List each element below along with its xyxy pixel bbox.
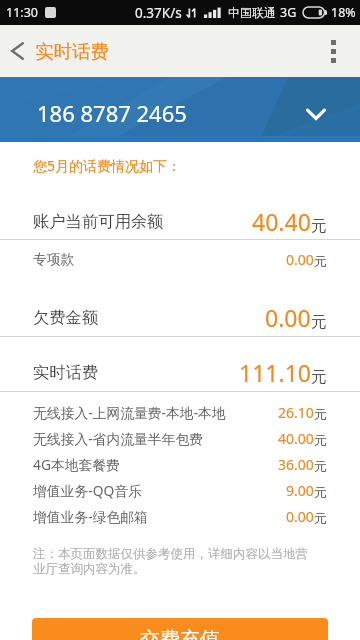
staticText: 0.00: [265, 302, 311, 333]
button[interactable]: 4G本地套餐费: [0, 444, 360, 470]
staticText: 元: [311, 367, 327, 387]
staticText: 交费充值: [140, 627, 220, 640]
staticText: 增值业务-QQ音乐: [33, 481, 142, 500]
staticText: 账户当前可用余额: [33, 211, 164, 232]
staticText: 9.00: [286, 481, 314, 500]
staticText: 元: [314, 253, 327, 269]
staticText: 3G: [280, 4, 297, 21]
staticText: 40.00: [278, 429, 314, 448]
staticText: 元: [311, 216, 327, 236]
button[interactable]: 欠费金额: [0, 283, 360, 336]
button[interactable]: 增值业务-QQ音乐: [0, 470, 360, 496]
staticText: 40.40: [252, 206, 311, 237]
staticText: 元: [314, 432, 327, 448]
button[interactable]: 186 8787 2465: [0, 77, 360, 142]
button[interactable]: 无线接入-省内流量半年包费: [0, 418, 360, 444]
button[interactable]: 增值业务-绿色邮箱: [0, 496, 360, 522]
staticText: 0.00: [286, 250, 314, 269]
staticText: 中国联通: [228, 5, 276, 20]
staticText: 元: [314, 458, 327, 474]
staticText: 11:30: [6, 4, 38, 21]
button[interactable]: 实时话费: [0, 337, 360, 391]
button[interactable]: 无线接入-上网流量费-本地-本地: [0, 392, 360, 418]
staticText: 元: [311, 312, 327, 332]
staticText: 111.10: [239, 357, 311, 388]
staticText: 无线接入-上网流量费-本地-本地: [33, 403, 226, 422]
staticText: 18%: [331, 4, 356, 21]
button[interactable]: 账户当前可用余额: [0, 188, 360, 239]
staticText: 实时话费: [33, 362, 99, 383]
button[interactable]: 专项款: [0, 240, 360, 283]
staticText: 元: [314, 484, 327, 500]
staticText: 无线接入-省内流量半年包费: [33, 429, 204, 448]
staticText: 0.00: [286, 507, 314, 526]
staticText: 0.37K/s: [135, 4, 182, 22]
staticText: 元: [314, 406, 327, 422]
staticText: 186 8787 2465: [37, 98, 187, 128]
staticText: 实时话费: [35, 40, 109, 63]
staticText: 您5月的话费情况如下：: [33, 156, 182, 175]
button[interactable]: More options: [312, 25, 360, 77]
staticText: 4G本地套餐费: [33, 455, 120, 474]
button[interactable]: Back: [0, 25, 35, 77]
staticText: 专项款: [33, 251, 75, 268]
staticText: 增值业务-绿色邮箱: [33, 507, 148, 526]
button[interactable]: 交费充值: [32, 618, 328, 640]
staticText: 26.10: [278, 403, 314, 422]
staticText: 元: [314, 510, 327, 526]
staticText: 欠费金额: [33, 307, 99, 328]
staticText: 36.00: [278, 455, 314, 474]
staticText: 注：本页面数据仅供参考使用，详细内容以当地营业厅查询内容为准。: [33, 546, 318, 577]
